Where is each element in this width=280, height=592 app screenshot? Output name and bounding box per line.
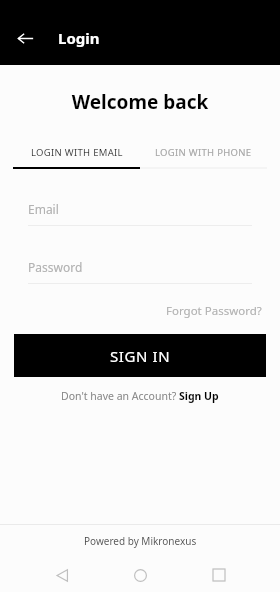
button[interactable]: Forgot Password? — [162, 300, 266, 322]
button[interactable]: SIGN IN — [14, 334, 266, 377]
staticText: Email — [28, 201, 59, 217]
staticText: Welcome back — [0, 89, 280, 115]
staticText: Don't have an Account? Sign Up — [61, 389, 219, 403]
staticText: SIGN IN — [110, 346, 171, 366]
button[interactable]: Back — [45, 558, 79, 592]
staticText: Forgot Password? — [166, 303, 262, 319]
button[interactable]: LOGIN WITH EMAIL — [13, 137, 140, 167]
staticText: LOGIN WITH PHONE — [155, 146, 252, 159]
button[interactable]: Back — [9, 22, 41, 54]
button[interactable]: LOGIN WITH PHONE — [140, 137, 267, 167]
button[interactable]: Recents — [202, 558, 236, 592]
staticText: Password — [28, 259, 83, 275]
button[interactable]: Don't have an Account? Sign Up — [55, 385, 225, 407]
staticText: Login — [58, 28, 100, 48]
button[interactable]: Email — [28, 201, 252, 226]
button[interactable]: Home — [123, 558, 157, 592]
staticText: LOGIN WITH EMAIL — [31, 146, 123, 159]
button[interactable]: Password — [28, 259, 252, 284]
staticText: Powered by Mikronexus — [84, 534, 197, 548]
